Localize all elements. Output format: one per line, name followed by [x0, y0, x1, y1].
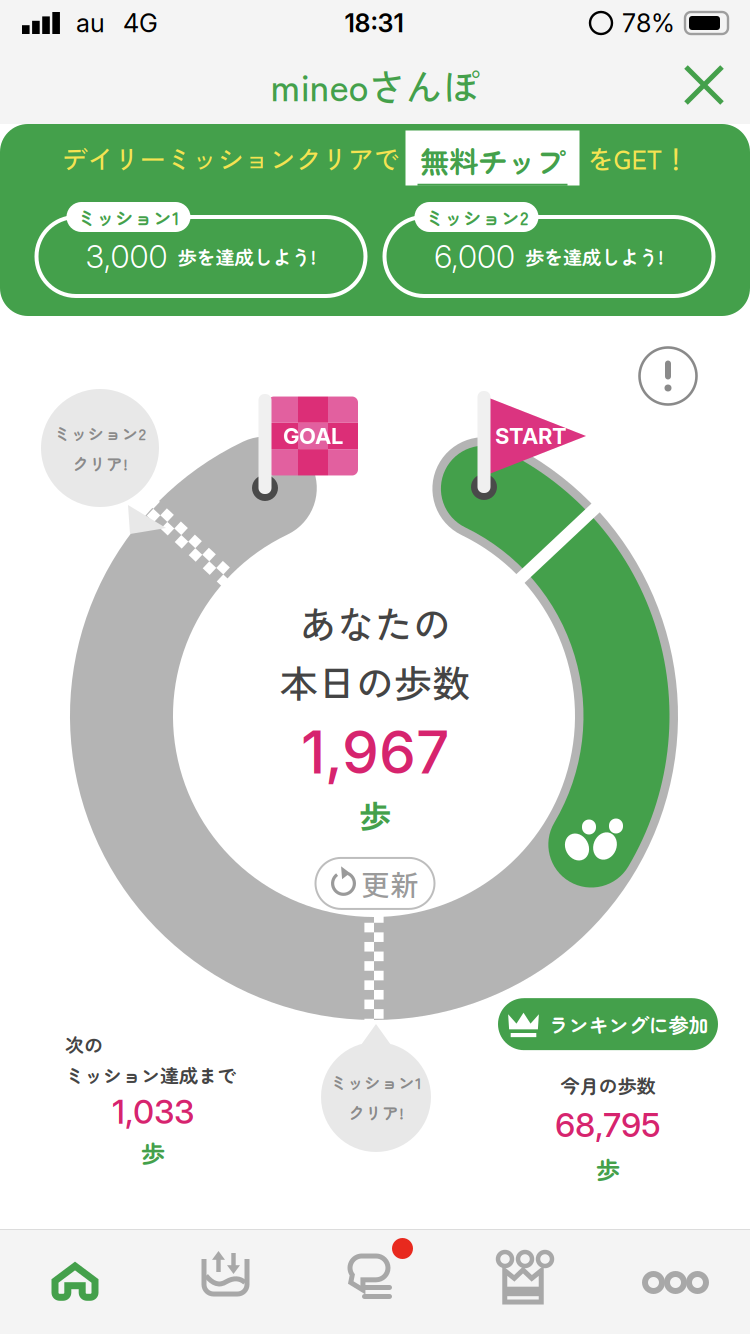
button[interactable]: 6,000 — [384, 194, 713, 303]
staticText: デイリーミッションクリアで — [61, 139, 399, 177]
button[interactable]: コミュニティ — [300, 1230, 450, 1334]
staticText: 歩 — [596, 1151, 620, 1186]
staticText: ミッション2 — [425, 203, 528, 231]
staticText: ランキングに参加 — [548, 1009, 708, 1039]
button[interactable]: その他 — [600, 1230, 750, 1334]
button[interactable]: 更新 — [315, 858, 434, 909]
staticText: ミッション2 — [53, 421, 146, 445]
staticText: 無料チップ — [420, 139, 565, 182]
button[interactable]: データ — [150, 1230, 300, 1334]
staticText: クリア! — [72, 451, 128, 475]
staticText: 歩 — [359, 792, 391, 838]
button[interactable]: 閉じる — [658, 46, 750, 124]
staticText: ミッション1 — [77, 203, 180, 231]
staticText: 68,795 — [555, 1105, 661, 1145]
staticText: 78% — [622, 8, 675, 38]
staticText: ミッション達成まで — [65, 1061, 236, 1089]
staticText: 本日の歩数 — [280, 654, 470, 709]
staticText: au — [76, 8, 105, 38]
staticText: 1,033 — [112, 1092, 194, 1132]
button[interactable]: ランキング — [450, 1230, 600, 1334]
button[interactable]: 無料チップ — [399, 130, 579, 185]
staticText: 歩 — [141, 1135, 165, 1170]
staticText: 歩を達成しよう! — [525, 243, 664, 270]
staticText: 6,000 — [434, 237, 515, 276]
staticText: mineoさんぽ — [270, 58, 479, 112]
staticText: クリア! — [348, 1100, 404, 1124]
staticText: ミッション1 — [330, 1070, 422, 1094]
staticText: あなたの — [299, 595, 451, 650]
staticText: 18:31 — [344, 8, 403, 38]
staticText: 更新 — [361, 863, 419, 904]
staticText: 次の — [65, 1030, 103, 1058]
staticText: GOAL — [283, 423, 343, 449]
staticText: START — [495, 423, 567, 449]
button[interactable]: 3,000 — [36, 194, 365, 303]
button[interactable]: ホーム — [0, 1230, 150, 1334]
staticText: 3,000 — [85, 237, 167, 276]
staticText: 今月の歩数 — [560, 1071, 655, 1099]
staticText: 歩を達成しよう! — [177, 243, 316, 270]
staticText: をGET！ — [587, 139, 688, 177]
staticText: 1,967 — [301, 717, 449, 788]
button[interactable]: インフォメーション — [630, 338, 706, 414]
button[interactable]: ランキングに参加 — [498, 998, 718, 1050]
staticText: 4G — [123, 8, 158, 38]
